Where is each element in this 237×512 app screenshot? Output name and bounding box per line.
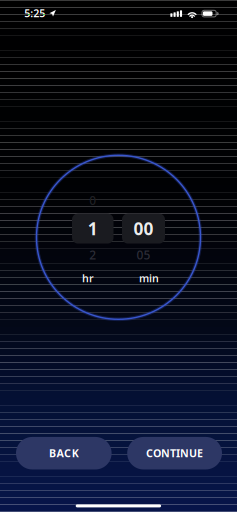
staticText: 1 [88,217,98,240]
staticText: min [139,271,159,285]
button[interactable]: 0 [30,149,206,325]
staticText: 00 [133,217,153,240]
button[interactable]: BACK [16,437,112,469]
staticText: 0 [89,192,96,208]
staticText: BACK [49,446,79,460]
staticText: 5:25 [24,6,45,20]
staticText: CONTINUE [146,446,203,460]
button[interactable]: CONTINUE [127,437,222,469]
staticText: 05 [136,247,150,263]
staticText: hr [82,271,94,285]
button[interactable] [30,149,206,325]
staticText: 2 [89,247,96,263]
